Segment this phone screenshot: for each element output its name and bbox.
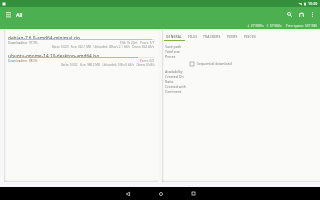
staticText: TRACKERS [203,34,221,38]
button[interactable]: Home [144,187,177,200]
staticText: Comment [165,89,182,94]
staticText: Ratio: 0.002 Size: 988.2 MB Uploaded: 0 … [61,63,155,66]
button[interactable]: ubuntu-gnome-14.10-desktop-amd64.iso [4,48,158,66]
staticText: Ratio [165,79,174,84]
staticText: Downloading · 97.9% [8,41,38,44]
staticText: PIECES [244,34,256,38]
staticText: ↑ 57 KB/s [266,23,282,28]
staticText: Sequential download [197,61,232,66]
staticText: PEERS [227,34,238,38]
button[interactable]: TRACKERS [200,30,224,41]
button[interactable]: Add magnet link [296,9,307,20]
staticText: ETA: 1h 23m Peers: 5/7 [120,41,155,44]
staticText: Total size [165,49,181,54]
staticText: Free space: 557 MB [286,23,317,28]
staticText: Pieces [165,54,176,59]
button[interactable]: Recent apps [177,187,210,200]
button[interactable]: PEERS [224,30,241,41]
button[interactable]: debian-7.6.0-amd64-minimal.zip [4,30,158,48]
staticText: Downloading · 88.5% [8,59,38,62]
staticText: Created with [165,84,186,89]
button[interactable]: Navigation drawer [3,9,14,20]
button[interactable]: Back [111,187,144,200]
staticText: GENERAL [166,34,183,38]
button[interactable]: Sequential download [190,61,232,66]
button[interactable]: Search [284,9,295,20]
staticText: Save path [165,44,182,49]
staticText: Ratio: 0.020 Size: 362.1 MB Uploaded: 38… [52,45,155,48]
button[interactable]: GENERAL [164,30,185,41]
staticText: Peers: 6/3 [140,59,155,62]
staticText: FILES [188,34,198,38]
staticText: ↓ 27 MB/s [247,23,264,28]
button[interactable]: FILES [185,30,200,41]
button[interactable]: PIECES [241,30,259,41]
button[interactable]: More options [307,9,317,19]
staticText: All [16,11,23,18]
staticText: ubuntu-gnome-14.10-desktop-amd64.iso [8,53,100,57]
staticText: Created On [165,74,184,79]
staticText: Availability [165,69,183,74]
staticText: 10:30 [308,1,318,6]
staticText: debian-7.6.0-amd64-minimal.zip [8,35,80,39]
